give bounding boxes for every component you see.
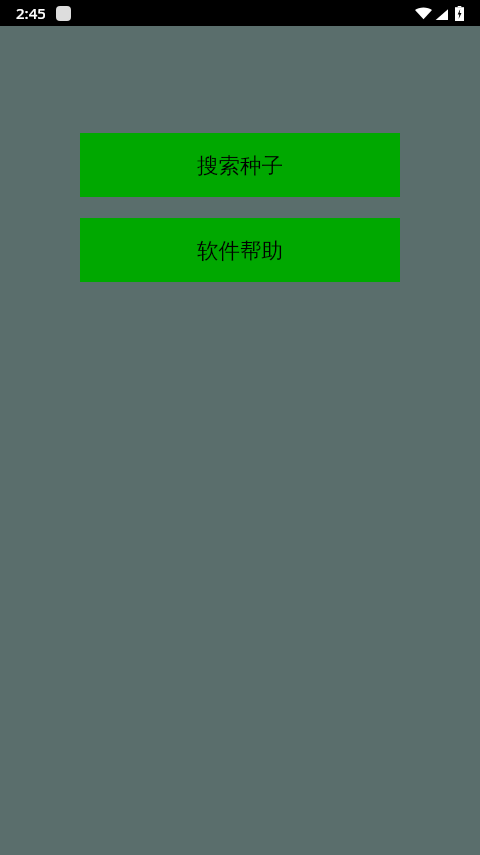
button[interactable]: 软件帮助	[80, 218, 400, 282]
button[interactable]: 搜索种子	[80, 133, 400, 197]
staticText: 软件帮助	[197, 237, 283, 264]
staticText: 搜索种子	[197, 152, 283, 179]
other: Battery charging	[455, 6, 464, 21]
staticText: 2:45	[16, 3, 46, 23]
other: Screenshot notification	[56, 6, 71, 21]
other: Mobile signal	[435, 8, 448, 21]
other: Wi-Fi signal	[415, 6, 432, 20]
